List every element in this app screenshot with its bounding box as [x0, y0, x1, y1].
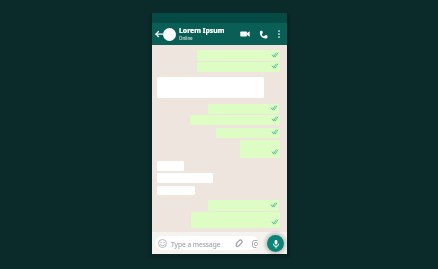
button[interactable] [191, 212, 280, 228]
button[interactable] [190, 115, 280, 125]
button[interactable]: Voice message [267, 235, 284, 252]
button[interactable]: Type a message [155, 236, 258, 250]
staticText: Online [179, 35, 193, 41]
button[interactable] [208, 104, 279, 114]
button[interactable] [197, 50, 280, 61]
button[interactable]: Call [257, 28, 269, 40]
button[interactable]: Video call [239, 28, 251, 40]
button[interactable] [216, 128, 280, 138]
button[interactable]: More options [273, 28, 285, 40]
button[interactable] [240, 140, 280, 158]
staticText: Lorem Ipsum [179, 26, 225, 35]
button[interactable] [208, 200, 279, 211]
button[interactable] [197, 62, 280, 72]
button[interactable]: Profile photo [163, 28, 176, 41]
button[interactable]: Back [153, 28, 165, 40]
staticText: Type a message [171, 240, 221, 249]
